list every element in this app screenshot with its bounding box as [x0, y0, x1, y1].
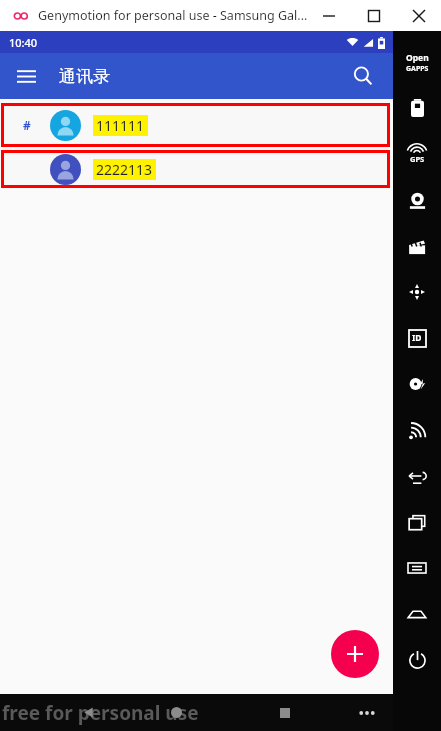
button[interactable]: Home — [158, 694, 195, 731]
button[interactable]: Maximize — [351, 0, 396, 31]
button[interactable]: Close — [396, 0, 441, 31]
staticText: Open — [406, 52, 429, 64]
staticText: Genymotion for personal use - Samsung Ga… — [38, 7, 308, 24]
button[interactable]: Identifiers — [393, 315, 441, 361]
button[interactable]: Menu — [393, 545, 441, 591]
staticText: GPS — [410, 154, 425, 164]
button[interactable]: Recent apps — [266, 694, 303, 731]
staticText: 10:40 — [9, 35, 38, 50]
button[interactable]: Search — [343, 56, 383, 96]
button[interactable]: # — [4, 106, 387, 144]
button[interactable]: Open navigation menu — [6, 56, 46, 96]
button[interactable]: Power — [393, 637, 441, 683]
button[interactable]: Minimize — [306, 0, 351, 31]
button[interactable]: 2222113 — [4, 153, 387, 185]
button[interactable]: Back — [393, 453, 441, 499]
button[interactable]: Recent apps — [393, 499, 441, 545]
staticText: 2222113 — [96, 160, 153, 179]
button[interactable]: Camera — [393, 177, 441, 223]
button[interactable]: Home — [393, 591, 441, 637]
staticText: GAPPS — [406, 64, 429, 74]
button[interactable]: D-pad — [393, 269, 441, 315]
button[interactable]: Battery — [393, 85, 441, 131]
staticText: # — [23, 117, 31, 133]
button[interactable]: Open GApps — [395, 41, 439, 85]
staticText: 通讯录 — [59, 66, 110, 87]
button[interactable]: Add contact — [331, 630, 379, 678]
staticText: free for personal use — [2, 700, 199, 726]
staticText: 111111 — [96, 116, 145, 135]
button[interactable]: More options — [348, 694, 385, 731]
button[interactable]: Disk IO — [393, 361, 441, 407]
button[interactable]: GPS — [393, 131, 441, 177]
staticText: ID — [412, 332, 422, 344]
button[interactable]: Network — [393, 407, 441, 453]
button[interactable]: Screen recorder — [393, 223, 441, 269]
button[interactable]: Back — [70, 694, 107, 731]
